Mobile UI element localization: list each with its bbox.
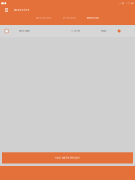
button[interactable]: MY ROUTINE (63, 17, 76, 19)
staticText: Party Event (19, 30, 30, 32)
button[interactable]: Menu (2, 6, 10, 14)
staticText: My Routine (14, 8, 30, 12)
button[interactable]: REMINDERS (86, 17, 98, 19)
staticText: MY ROUTINE (63, 17, 76, 19)
staticText: Add My Reminder (55, 156, 80, 159)
staticText: 11:00 PM (71, 30, 80, 32)
button[interactable]: Party Event (0, 25, 135, 37)
staticText: ABOUT ROUTINE (35, 17, 51, 19)
staticText: 5:09 (126, 2, 130, 5)
staticText: Annual (100, 30, 105, 32)
button[interactable]: Add My Reminder (2, 152, 133, 163)
button[interactable]: ABOUT ROUTINE (35, 17, 51, 19)
staticText: REMINDERS (86, 17, 98, 19)
